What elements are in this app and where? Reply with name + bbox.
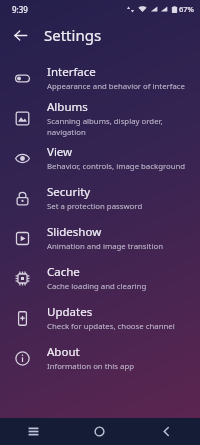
staticText: View [47, 144, 73, 160]
staticText: Check for updates, choose channel [47, 321, 175, 332]
button[interactable]: Cache [0, 258, 200, 298]
staticText: 9:39 [12, 4, 28, 15]
staticText: Interface [47, 64, 96, 80]
staticText: Cache loading and clearing [47, 281, 147, 292]
button[interactable]: Interface [0, 58, 200, 98]
staticText: Behavior, controls, image background [47, 161, 186, 172]
staticText: Slideshow [47, 224, 102, 240]
button[interactable]: Security [0, 178, 200, 218]
staticText: Information on this app [47, 361, 135, 372]
staticText: Settings [44, 25, 102, 45]
staticText: Scanning albums, display order, navigati… [47, 116, 192, 138]
staticText: Albums [47, 99, 88, 115]
button[interactable]: Albums [0, 98, 200, 138]
button[interactable]: Back [133, 418, 200, 445]
staticText: Cache [47, 264, 80, 280]
staticText: About [47, 344, 80, 360]
staticText: Set a protection password [47, 201, 143, 212]
button[interactable]: Home [66, 418, 133, 445]
button[interactable]: Slideshow [0, 218, 200, 258]
staticText: Animation and image transition [47, 241, 163, 252]
staticText: Appearance and behavior of interface [47, 81, 185, 92]
staticText: Security [47, 184, 91, 200]
button[interactable]: Back [6, 21, 34, 49]
staticText: Updates [47, 304, 93, 320]
button[interactable]: Updates [0, 298, 200, 338]
button[interactable]: About [0, 338, 200, 378]
button[interactable]: Recents [0, 418, 66, 445]
button[interactable]: View [0, 138, 200, 178]
staticText: 67% [179, 4, 194, 14]
